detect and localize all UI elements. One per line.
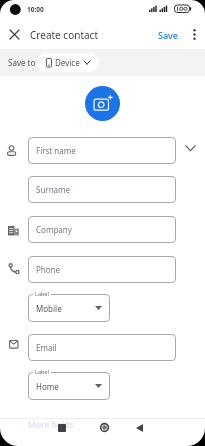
button[interactable]: Home bbox=[28, 372, 110, 400]
button[interactable] bbox=[6, 26, 23, 43]
button[interactable]: Phone bbox=[28, 256, 176, 283]
staticText: Create contact bbox=[30, 28, 99, 42]
button[interactable] bbox=[95, 420, 113, 435]
button[interactable]: Company bbox=[28, 216, 176, 243]
button[interactable]: More fields bbox=[28, 419, 74, 429]
staticText: Device bbox=[55, 57, 80, 68]
button[interactable]: Device bbox=[37, 53, 99, 72]
button[interactable] bbox=[85, 86, 120, 121]
staticText: First name bbox=[36, 145, 76, 156]
staticText: Company bbox=[36, 224, 72, 235]
button[interactable] bbox=[187, 21, 201, 48]
button[interactable] bbox=[52, 420, 72, 435]
button[interactable]: Mobile bbox=[28, 294, 110, 322]
staticText: Label bbox=[35, 290, 49, 297]
staticText: Save to bbox=[8, 57, 36, 68]
button[interactable]: First name bbox=[28, 137, 176, 164]
staticText: 10:00 bbox=[27, 5, 44, 14]
button[interactable]: Email bbox=[28, 334, 176, 361]
button[interactable]: Surname bbox=[28, 176, 176, 203]
staticText: Email bbox=[36, 342, 57, 353]
button[interactable] bbox=[129, 420, 149, 435]
staticText: Label bbox=[35, 368, 49, 375]
staticText: Phone bbox=[36, 264, 61, 275]
staticText: Home bbox=[36, 381, 59, 392]
staticText: Mobile bbox=[36, 303, 62, 314]
button[interactable]: Save bbox=[152, 20, 185, 49]
staticText: More fields bbox=[28, 419, 74, 429]
staticText: Surname bbox=[36, 184, 71, 195]
staticText: Save bbox=[158, 29, 179, 41]
